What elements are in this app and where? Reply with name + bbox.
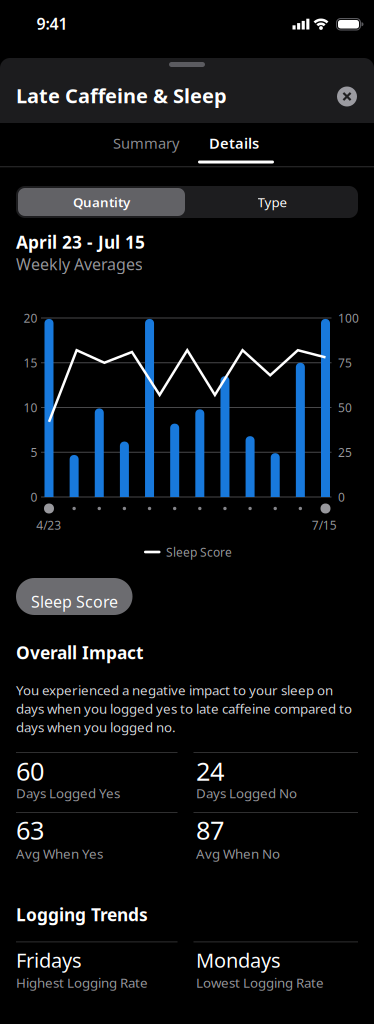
staticText: 5	[30, 444, 37, 460]
staticText: Days Logged No	[196, 784, 297, 802]
staticText: 87	[196, 813, 224, 847]
staticText: 75	[338, 355, 352, 371]
staticText: 24	[196, 754, 224, 788]
staticText: days when you logged yes to late caffein…	[16, 700, 352, 717]
staticText: 15	[23, 355, 37, 371]
staticText: 25	[338, 444, 352, 460]
staticText: 0	[30, 489, 37, 505]
staticText: 20	[23, 310, 37, 326]
staticText: 63	[16, 813, 44, 847]
staticText: Sleep Score	[31, 591, 118, 612]
staticText: Quantity	[73, 193, 130, 211]
staticText: 50	[338, 399, 352, 415]
button[interactable]: Quantity	[16, 186, 187, 218]
button[interactable]: Type	[187, 186, 358, 218]
staticText: Avg When No	[196, 845, 280, 862]
staticText: Overall Impact	[16, 641, 144, 664]
staticText: Highest Logging Rate	[16, 974, 148, 991]
button[interactable]: Sleep Score	[16, 578, 132, 615]
staticText: 4/23	[36, 517, 61, 533]
staticText: days when you logged no.	[16, 718, 176, 736]
staticText: Details	[209, 133, 259, 153]
staticText: You experienced a negative impact to you…	[16, 681, 333, 699]
staticText: Weekly Averages	[16, 253, 143, 275]
button[interactable]: Details	[0, 0, 110, 24]
staticText: Summary	[113, 133, 179, 153]
button[interactable]	[337, 86, 357, 106]
staticText: Days Logged Yes	[16, 784, 120, 802]
staticText: Lowest Logging Rate	[196, 974, 324, 991]
staticText: 9:41	[36, 13, 67, 34]
staticText: 0	[338, 489, 345, 505]
staticText: Sleep Score	[166, 544, 232, 560]
staticText: Fridays	[16, 947, 82, 973]
staticText: April 23 - Jul 15	[16, 230, 145, 253]
staticText: Late Caffeine & Sleep	[16, 82, 227, 109]
staticText: Mondays	[196, 947, 281, 973]
staticText: 100	[338, 310, 359, 326]
staticText: Logging Trends	[16, 903, 148, 926]
button[interactable]: Summary	[0, 0, 110, 24]
staticText: Type	[257, 193, 287, 211]
staticText: 60	[16, 754, 44, 788]
staticText: 10	[23, 399, 37, 415]
staticText: 7/15	[312, 517, 337, 533]
staticText: Avg When Yes	[16, 845, 103, 862]
